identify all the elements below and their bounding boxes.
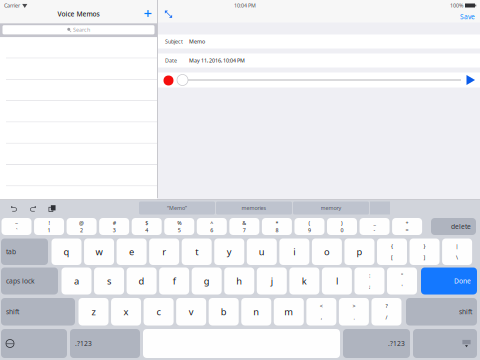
button[interactable]: (: [294, 218, 324, 235]
button[interactable]: Done: [421, 267, 477, 294]
button[interactable]: [0, 122, 157, 144]
button[interactable]: “Memo”: [139, 201, 215, 214]
button[interactable]: <: [306, 298, 336, 325]
button[interactable]: [0, 186, 157, 208]
button[interactable]: :: [354, 267, 384, 294]
button[interactable]: ~: [1, 218, 31, 235]
staticText: ;: [369, 283, 370, 290]
button[interactable]: }: [409, 238, 439, 265]
button[interactable]: .?123: [70, 329, 140, 358]
staticText: z: [91, 306, 95, 318]
button[interactable]: ^: [197, 218, 227, 235]
staticText: t: [195, 246, 198, 258]
staticText: Save: [460, 12, 475, 21]
button[interactable]: Paste: [48, 205, 56, 212]
button[interactable]: p: [344, 238, 374, 265]
button[interactable]: Save: [440, 11, 476, 22]
button[interactable]: s: [94, 267, 124, 294]
button[interactable]: Exit full screen: [165, 10, 172, 18]
staticText: 4: [145, 226, 148, 234]
button[interactable]: #: [99, 218, 129, 235]
button[interactable]: *: [262, 218, 292, 235]
staticText: !: [48, 219, 49, 226]
button[interactable]: w: [84, 238, 114, 265]
button[interactable]: Redo: [29, 206, 36, 212]
staticText: o: [324, 246, 330, 258]
button[interactable]: m: [274, 298, 304, 325]
button[interactable]: q: [51, 238, 81, 265]
button[interactable]: Play: [465, 74, 475, 85]
button[interactable]: i: [279, 238, 309, 265]
button[interactable]: a: [61, 267, 91, 294]
button[interactable]: !: [34, 218, 64, 235]
button[interactable]: x: [111, 298, 141, 325]
button[interactable]: c: [144, 298, 174, 325]
button[interactable]: t: [182, 238, 212, 265]
button[interactable]: [0, 58, 157, 80]
button[interactable]: ": [387, 267, 417, 294]
button[interactable]: y: [214, 238, 244, 265]
staticText: .?123: [75, 339, 92, 348]
button[interactable]: +: [392, 218, 422, 235]
staticText: 10:04 PM: [234, 2, 256, 9]
button[interactable]: u: [247, 238, 277, 265]
button[interactable]: ?: [371, 298, 401, 325]
staticText: ,: [321, 314, 322, 321]
button[interactable]: New Recording: [141, 7, 155, 19]
button[interactable]: shift: [406, 298, 477, 325]
button[interactable]: Search: [2, 25, 154, 34]
staticText: &: [242, 219, 246, 226]
button[interactable]: ): [327, 218, 357, 235]
staticText: q: [63, 246, 69, 258]
button[interactable]: @: [67, 218, 97, 235]
button[interactable]: d: [127, 267, 157, 294]
staticText: ]: [423, 254, 425, 261]
button[interactable]: caps lock: [1, 267, 58, 294]
button[interactable]: [0, 165, 157, 186]
button[interactable]: n: [241, 298, 271, 325]
staticText: .?123: [388, 339, 405, 348]
button[interactable]: $: [132, 218, 162, 235]
staticText: :: [369, 272, 370, 279]
button[interactable]: e: [117, 238, 147, 265]
button[interactable]: Record: [163, 75, 173, 85]
button[interactable]: memories: [216, 201, 292, 214]
button[interactable]: v: [176, 298, 206, 325]
staticText: ^: [210, 219, 213, 226]
button[interactable]: %: [164, 218, 194, 235]
button[interactable]: .?123: [343, 329, 410, 358]
button[interactable]: [0, 80, 157, 101]
staticText: \: [456, 254, 458, 261]
staticText: %: [177, 219, 181, 226]
button[interactable]: memory: [293, 201, 369, 214]
button[interactable]: r: [149, 238, 179, 265]
button[interactable]: [0, 144, 157, 165]
button[interactable]: _: [359, 218, 389, 235]
button[interactable]: g: [192, 267, 222, 294]
button[interactable]: z: [78, 298, 108, 325]
button[interactable]: shift: [1, 298, 75, 325]
staticText: r: [162, 246, 166, 258]
button[interactable]: |: [442, 238, 472, 265]
button[interactable]: >: [339, 298, 369, 325]
button[interactable]: Undo: [10, 206, 17, 212]
button[interactable]: {: [377, 238, 407, 265]
staticText: 2: [80, 226, 83, 234]
button[interactable]: Hide keyboard: [413, 329, 477, 358]
button[interactable]: j: [257, 267, 287, 294]
button[interactable]: l: [322, 267, 352, 294]
button[interactable]: h: [224, 267, 254, 294]
button[interactable]: tab: [1, 238, 48, 265]
button[interactable]: &: [229, 218, 259, 235]
button[interactable]: o: [312, 238, 342, 265]
button[interactable]: delete: [431, 218, 476, 235]
button[interactable]: b: [209, 298, 239, 325]
button[interactable]: k: [289, 267, 319, 294]
staticText: c: [157, 306, 161, 318]
button[interactable]: f: [159, 267, 189, 294]
staticText: n: [253, 306, 259, 318]
button[interactable]: Next keyboard: [1, 329, 67, 358]
